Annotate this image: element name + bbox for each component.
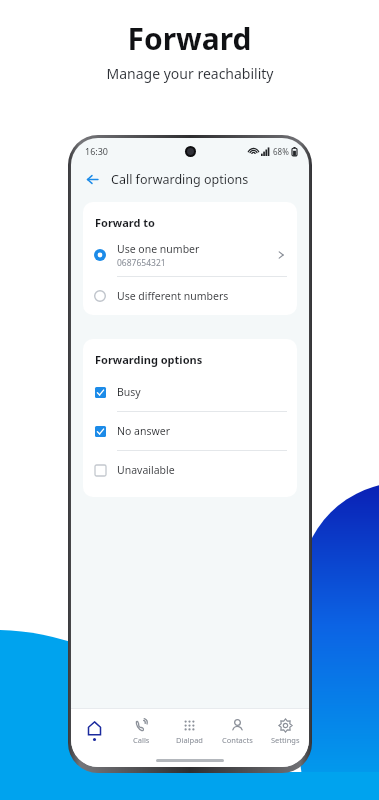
staticText: Call forwarding options xyxy=(111,171,249,188)
button[interactable]: Settings xyxy=(261,718,309,745)
button[interactable]: Use one number xyxy=(83,234,297,276)
staticText: No answer xyxy=(117,424,170,438)
staticText: Settings xyxy=(271,735,300,745)
staticText: Dialpad xyxy=(176,735,203,745)
staticText: Forward xyxy=(127,18,252,59)
staticText: Contacts xyxy=(222,735,253,745)
staticText: Manage your reachability xyxy=(106,64,274,83)
button[interactable]: Dialpad xyxy=(165,718,213,745)
button[interactable]: No answer xyxy=(83,412,297,450)
button[interactable]: Home xyxy=(71,721,118,741)
staticText: Forwarding options xyxy=(95,352,203,367)
button[interactable]: Unavailable xyxy=(83,451,297,489)
button[interactable]: Use different numbers xyxy=(83,277,297,315)
staticText: Use one number xyxy=(117,242,200,256)
staticText: Forward to xyxy=(95,215,155,230)
staticText: Busy xyxy=(117,385,141,399)
button[interactable]: Back xyxy=(81,168,103,190)
staticText: Calls xyxy=(133,735,150,745)
button[interactable]: Busy xyxy=(83,373,297,411)
button[interactable]: Calls xyxy=(118,718,165,745)
button[interactable]: Contacts xyxy=(213,718,261,745)
staticText: 0687654321 xyxy=(117,257,166,269)
staticText: 68% xyxy=(273,146,289,157)
staticText: Unavailable xyxy=(117,463,175,477)
staticText: Use different numbers xyxy=(117,289,229,303)
staticText: 16:30 xyxy=(85,145,109,157)
